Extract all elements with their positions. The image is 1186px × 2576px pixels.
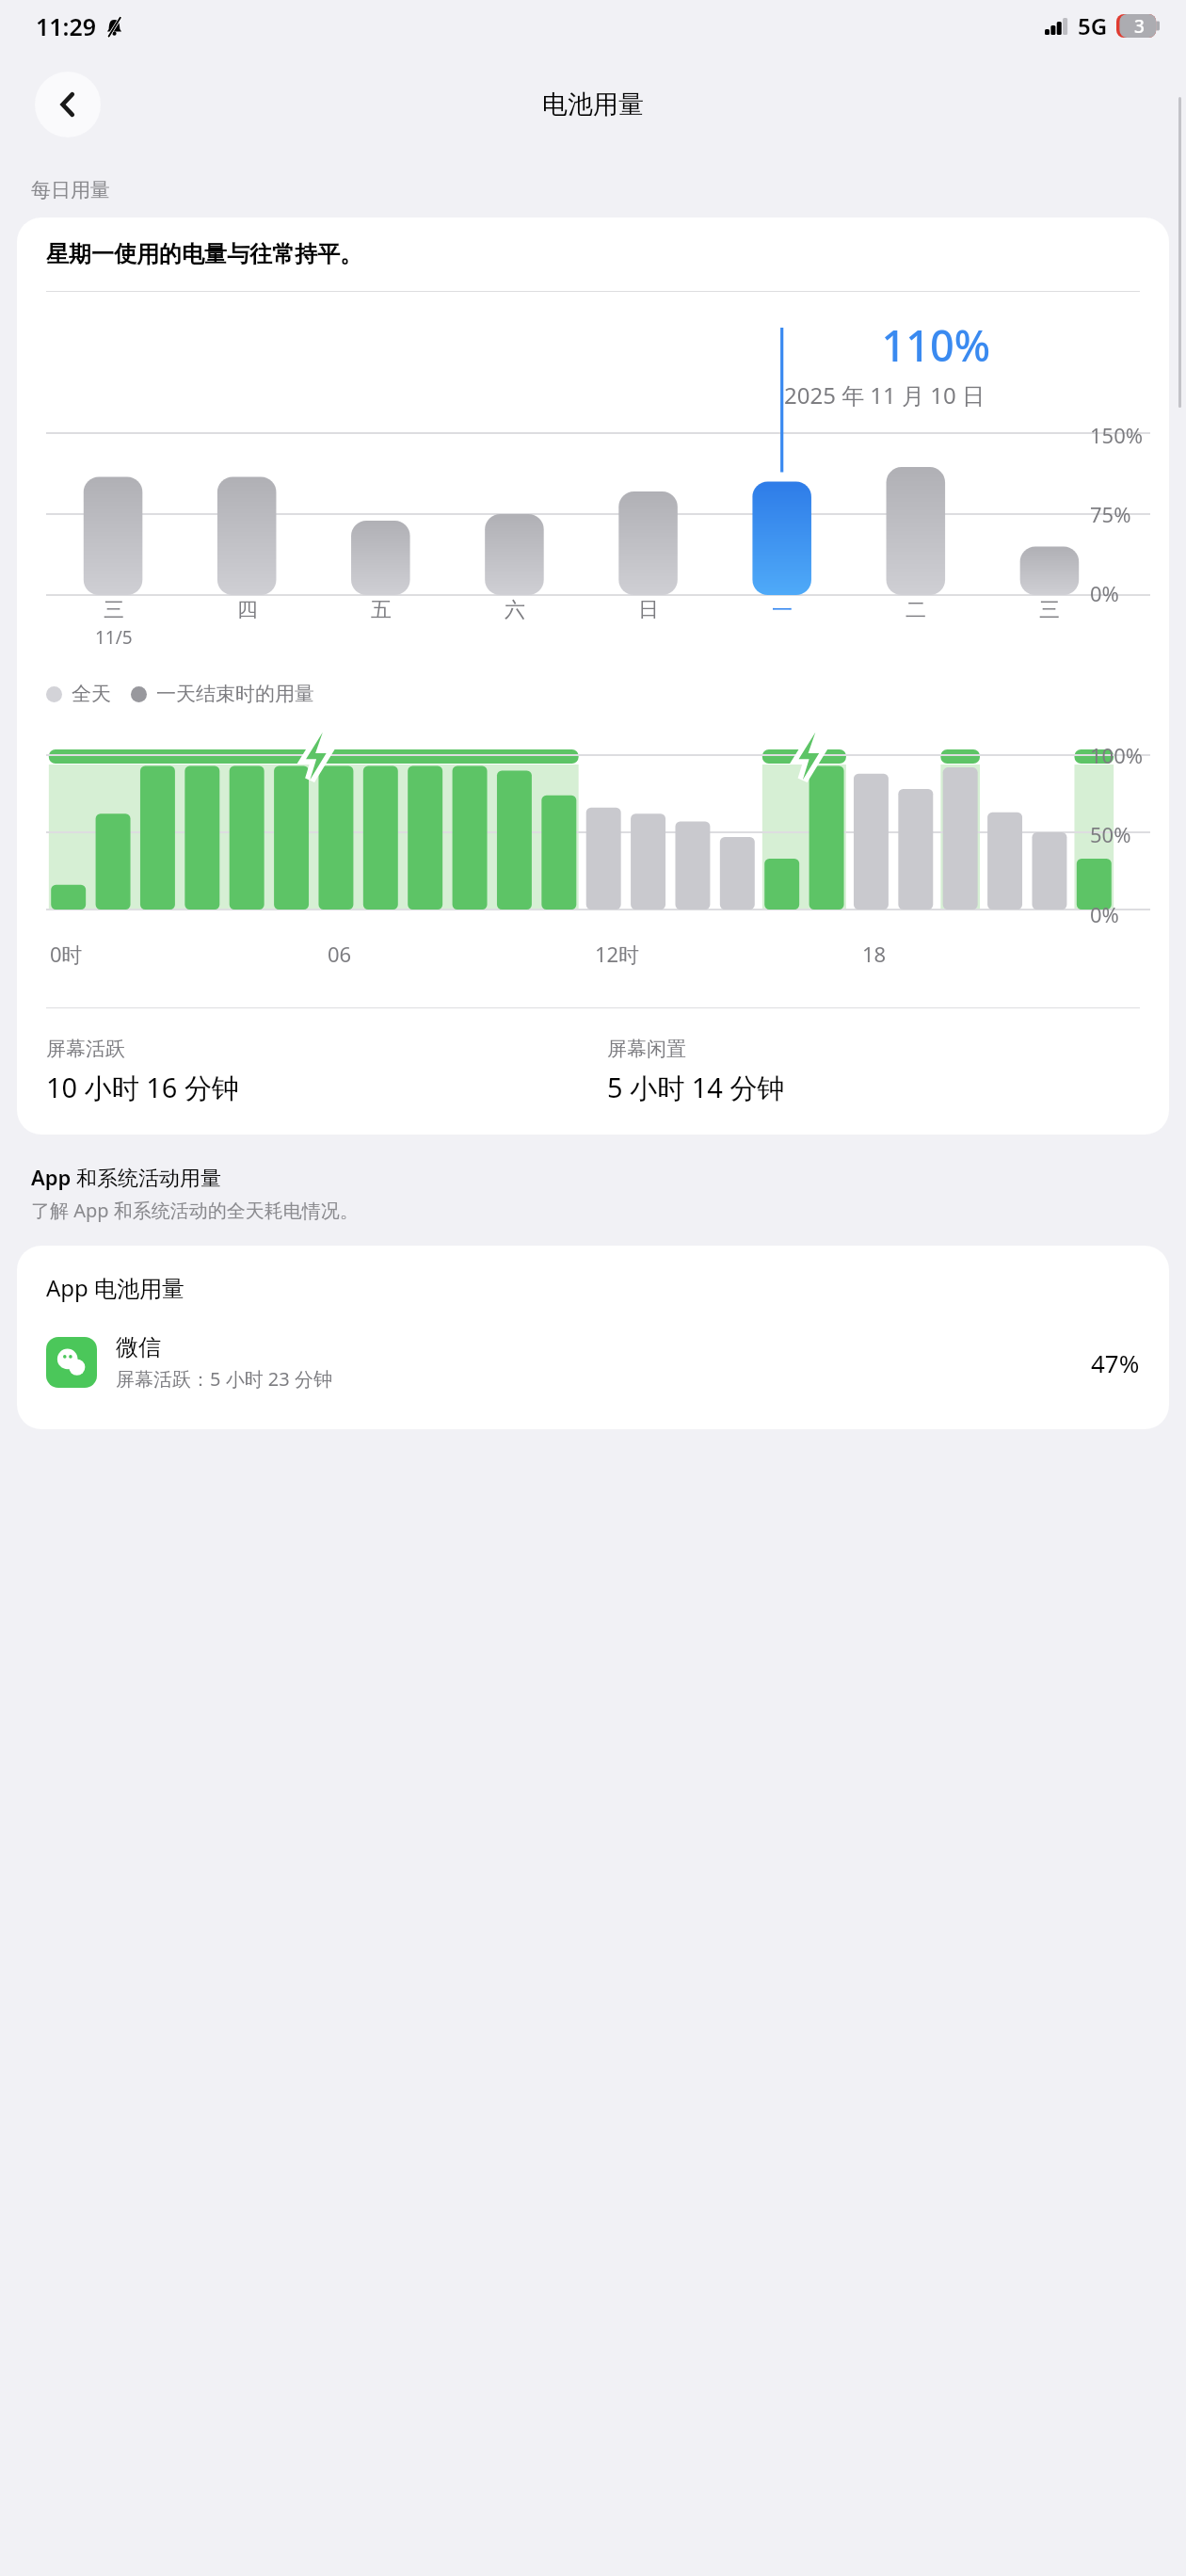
staticText: 星期一使用的电量与往常持平。: [46, 240, 362, 268]
staticText: 四: [237, 597, 258, 623]
staticText: 日: [638, 597, 659, 623]
staticText: 06: [328, 940, 352, 968]
staticText: 47%: [1091, 1346, 1140, 1379]
staticText: 了解 App 和系统活动的全天耗电情况。: [31, 1198, 359, 1223]
staticText: 100%: [1090, 741, 1144, 769]
staticText: 75%: [1090, 500, 1131, 528]
staticText: 屏幕闲置: [607, 1037, 686, 1061]
staticText: 50%: [1090, 820, 1131, 848]
staticText: 0时: [50, 940, 83, 968]
staticText: App 和系统活动用量: [31, 1163, 222, 1191]
staticText: 全天: [72, 682, 111, 706]
staticText: 0%: [1090, 579, 1119, 607]
staticText: 微信: [116, 1333, 161, 1361]
staticText: 110%: [17, 316, 990, 374]
staticText: 2025 年 11 月 10 日: [17, 379, 985, 411]
staticText: 电池用量: [542, 89, 644, 121]
staticText: 五: [371, 597, 392, 623]
staticText: App 电池用量: [46, 1272, 185, 1303]
staticText: 屏幕活跃: [46, 1037, 125, 1061]
staticText: 一: [772, 597, 793, 623]
staticText: 18: [862, 940, 887, 968]
staticText: 10 小时 16 分钟: [46, 1069, 239, 1106]
staticText: 一天结束时的用量: [156, 682, 314, 706]
button[interactable]: 返回: [35, 72, 101, 137]
staticText: 3: [1134, 14, 1145, 38]
staticText: 12时: [595, 940, 640, 968]
staticText: 六: [505, 597, 525, 623]
staticText: 11/5: [95, 625, 133, 650]
staticText: 屏幕活跃：5 小时 23 分钟: [116, 1366, 332, 1392]
staticText: 每日用量: [31, 178, 110, 202]
staticText: 5G: [1078, 10, 1108, 41]
staticText: 5 小时 14 分钟: [607, 1069, 785, 1106]
staticText: 三: [1039, 597, 1060, 623]
staticText: 0%: [1090, 900, 1119, 928]
button[interactable]: 微信: [46, 1333, 1140, 1392]
staticText: 二: [906, 597, 926, 623]
staticText: 150%: [1090, 421, 1144, 449]
staticText: 三: [104, 597, 124, 623]
staticText: 11:29: [36, 10, 97, 42]
